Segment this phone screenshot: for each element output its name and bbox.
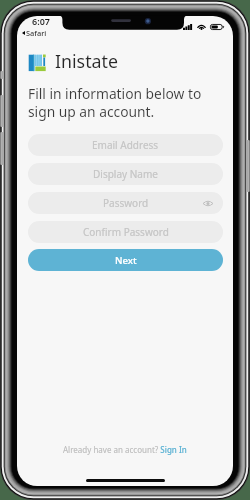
button[interactable]: Already have an account? Sign In bbox=[63, 444, 187, 455]
button[interactable]: Email Address bbox=[28, 134, 223, 156]
staticText: Next bbox=[115, 254, 137, 267]
other: Cellular signal bbox=[183, 24, 193, 30]
button[interactable]: Cellular signal bbox=[183, 23, 224, 30]
staticText: Email Address bbox=[92, 138, 159, 152]
staticText: Inistate bbox=[55, 49, 119, 73]
staticText: Password bbox=[103, 196, 149, 210]
other: Battery bbox=[210, 24, 224, 30]
staticText: Display Name bbox=[93, 167, 158, 181]
staticText: Fill in information below to sign up an … bbox=[28, 84, 210, 121]
button[interactable]: Back to Safari bbox=[22, 28, 47, 38]
button[interactable]: Next bbox=[28, 249, 223, 271]
other: Wi-Fi bbox=[197, 23, 206, 30]
staticText: Already have an account? Sign In bbox=[63, 444, 187, 455]
button[interactable]: Confirm Password bbox=[28, 221, 223, 243]
button[interactable]: Password bbox=[28, 192, 223, 214]
other: Back to Safari bbox=[22, 31, 25, 35]
other: Show password bbox=[203, 200, 213, 207]
staticText: Confirm Password bbox=[83, 225, 169, 239]
staticText: 6:07 bbox=[32, 16, 50, 27]
button[interactable]: Display Name bbox=[28, 163, 223, 185]
staticText: Safari bbox=[26, 28, 47, 38]
